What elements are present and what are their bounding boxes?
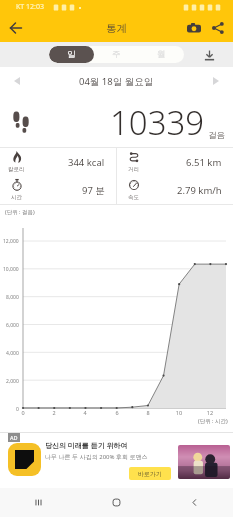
staticText: 8,000 xyxy=(6,294,19,301)
button[interactable]: Download xyxy=(199,45,219,65)
staticText: 0 xyxy=(18,409,28,416)
staticText: 주 xyxy=(112,49,121,60)
staticText: 10 xyxy=(174,409,184,416)
staticText: 시간 xyxy=(11,194,22,201)
staticText: 4 xyxy=(80,409,90,416)
button[interactable]: Back xyxy=(4,16,28,40)
button[interactable]: 일 xyxy=(49,46,94,63)
staticText: 4,000 xyxy=(6,350,19,357)
staticText: 0 xyxy=(16,406,19,412)
staticText: 속도 xyxy=(128,194,139,201)
staticText: 6 xyxy=(112,409,122,416)
staticText: (단위 : 시간) xyxy=(198,417,228,425)
staticText: 12 xyxy=(205,409,215,416)
button[interactable]: Recents xyxy=(0,488,77,517)
staticText: 97 분 xyxy=(82,184,105,197)
staticText: KT 12:03 xyxy=(16,2,44,12)
staticText: (단위 : 걸음) xyxy=(5,208,35,216)
staticText: AD xyxy=(10,434,18,441)
button[interactable]: AD xyxy=(0,432,233,488)
button[interactable]: 월 xyxy=(139,46,184,63)
staticText: 2,000 xyxy=(6,378,19,385)
staticText: 8 xyxy=(143,409,153,416)
button[interactable]: Camera xyxy=(182,16,206,40)
staticText: 거리 xyxy=(128,166,139,173)
staticText: 6.51 km xyxy=(186,156,222,169)
staticText: 월 xyxy=(157,49,166,60)
button[interactable]: 주 xyxy=(94,46,139,63)
button[interactable]: Share xyxy=(206,16,230,40)
staticText: 04월 18일 월요일 xyxy=(79,75,154,88)
staticText: 2.79 km/h xyxy=(177,184,222,197)
staticText: 통계 xyxy=(106,22,127,35)
staticText: 당신의 미래를 듣기 위하여 xyxy=(45,441,128,451)
staticText: 10339 xyxy=(110,100,205,145)
button[interactable]: 바로가기 xyxy=(129,467,171,480)
staticText: 걸음 xyxy=(208,130,225,141)
button[interactable]: Back xyxy=(155,488,233,517)
staticText: 2 xyxy=(49,409,59,416)
staticText: 10,000 xyxy=(3,266,19,273)
button[interactable]: Previous day xyxy=(8,72,26,90)
button[interactable]: 거리 xyxy=(117,148,233,176)
staticText: 12,000 xyxy=(3,238,19,245)
staticText: 6,000 xyxy=(6,322,19,329)
staticText: 일 xyxy=(67,49,76,60)
button[interactable]: 속도 xyxy=(117,176,233,204)
staticText: 나무 나른 두 사김의 200% 후회 로맨스 xyxy=(45,453,148,461)
button[interactable]: 시간 xyxy=(0,176,116,204)
button[interactable]: Next day xyxy=(207,72,225,90)
staticText: 칼로리 xyxy=(8,166,25,173)
button[interactable]: Home xyxy=(77,488,155,517)
staticText: 바로가기 xyxy=(138,470,162,478)
button[interactable]: 칼로리 xyxy=(0,148,116,176)
staticText: 344 kcal xyxy=(68,156,105,169)
